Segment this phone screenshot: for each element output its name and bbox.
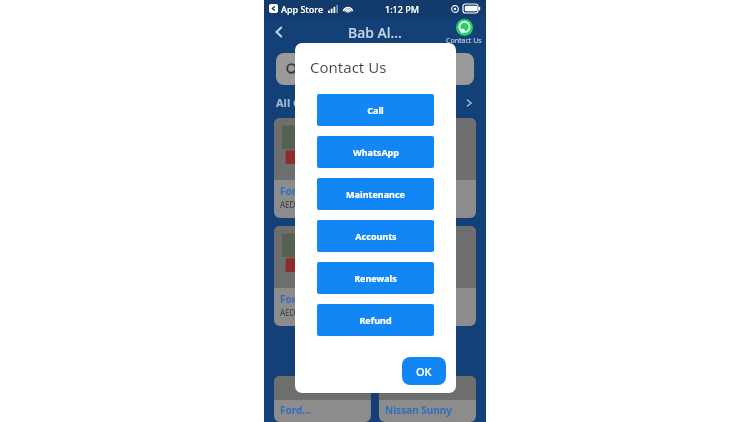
- button[interactable]: Hyundai: [379, 118, 476, 218]
- staticText: Renewals: [354, 272, 397, 284]
- button[interactable]: Contact Us on WhatsApp: [446, 19, 482, 46]
- staticText: App Store: [281, 3, 324, 15]
- staticText: Accounts: [355, 230, 397, 242]
- staticText: WhatsApp: [353, 146, 399, 158]
- staticText: OK: [416, 364, 432, 379]
- button[interactable]: Hyundai: [379, 226, 476, 326]
- staticText: Call: [367, 104, 384, 116]
- staticText: AED 1,200: [385, 307, 423, 318]
- staticText: All Cars: [276, 95, 318, 110]
- button[interactable]: Call: [317, 94, 434, 126]
- button[interactable]: Nissan Sunny: [379, 376, 476, 422]
- button[interactable]: Ford: [274, 226, 371, 326]
- button[interactable]: Renewals: [317, 262, 434, 294]
- button[interactable]: Accounts: [317, 220, 434, 252]
- staticText: AED 1,200: [280, 307, 318, 318]
- staticText: Maintenance: [346, 188, 405, 200]
- staticText: Hyundai: [385, 292, 427, 306]
- staticText: Contact Us: [446, 36, 482, 46]
- staticText: Ford...: [280, 403, 311, 417]
- button[interactable]: Refund: [317, 304, 434, 336]
- button[interactable]: WhatsApp: [317, 136, 434, 168]
- button[interactable]: Back: [268, 21, 290, 43]
- button[interactable]: Ford...: [274, 376, 371, 422]
- staticText: Ford: [280, 184, 303, 198]
- staticText: Contact Us: [310, 57, 387, 77]
- staticText: Refund: [359, 314, 392, 326]
- button[interactable]: [276, 53, 474, 85]
- button[interactable]: Ford: [274, 118, 371, 218]
- button[interactable]: OK: [402, 357, 446, 385]
- staticText: Nissan Sunny: [385, 403, 452, 417]
- staticText: Ford: [280, 292, 303, 306]
- staticText: AED 1,200: [280, 199, 318, 210]
- staticText: Hyundai: [385, 184, 427, 198]
- staticText: 1:12 PM: [385, 3, 419, 15]
- staticText: Bab Al...: [348, 23, 402, 42]
- button[interactable]: Maintenance: [317, 178, 434, 210]
